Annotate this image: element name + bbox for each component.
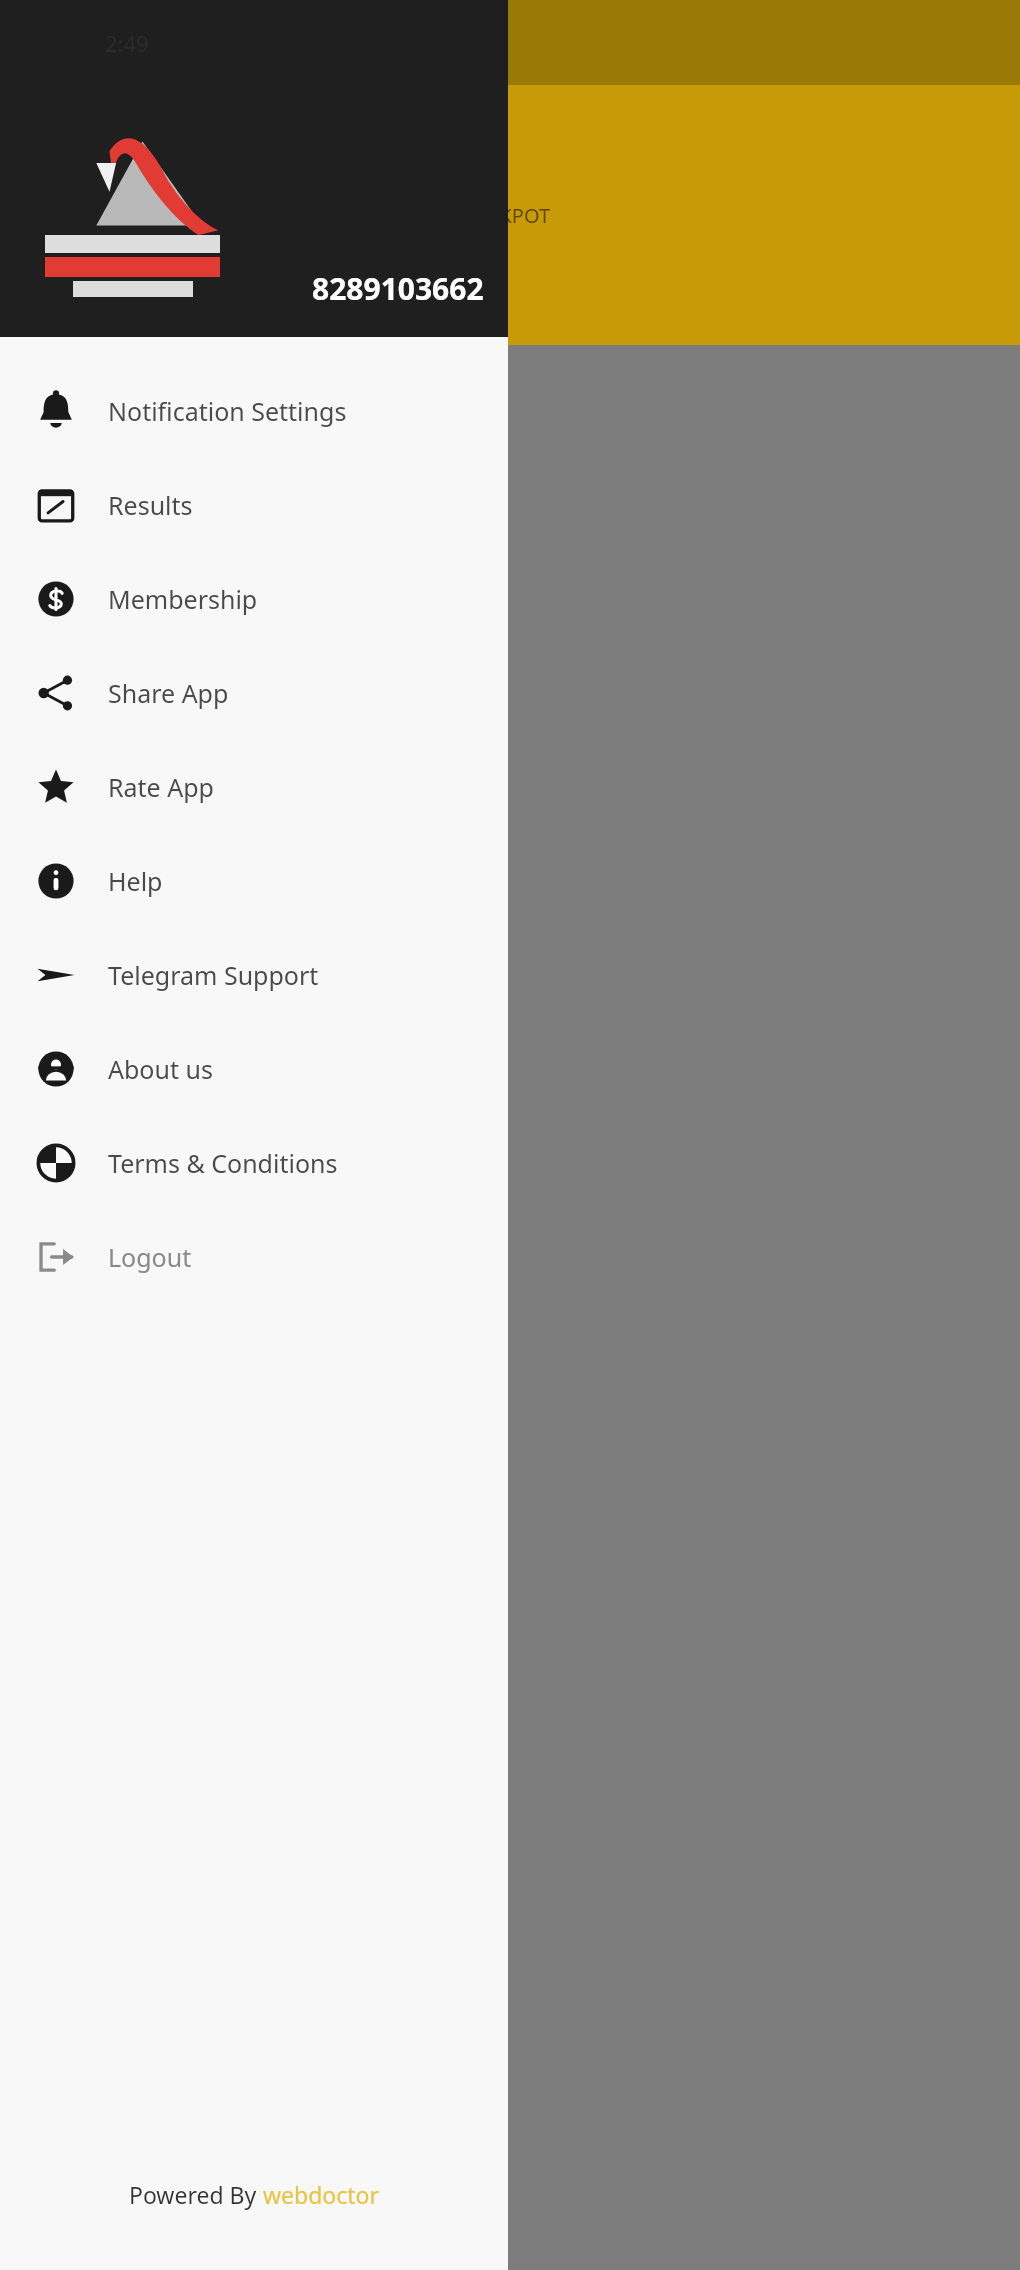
staticText: Terms & Conditions xyxy=(108,1146,338,1180)
staticText: 8289103662 xyxy=(312,268,484,309)
button[interactable]: Share App xyxy=(0,646,508,740)
button[interactable]: About us xyxy=(0,1022,508,1116)
staticText: webdoctor xyxy=(263,2179,380,2210)
button[interactable]: Membership xyxy=(0,552,508,646)
button[interactable]: Help xyxy=(0,834,508,928)
staticText: Logout xyxy=(108,1240,192,1274)
staticText: Membership xyxy=(108,582,258,616)
button[interactable]: Terms & Conditions xyxy=(0,1116,508,1210)
staticText: Telegram Support xyxy=(108,958,319,992)
staticText: About us xyxy=(108,1052,213,1086)
button[interactable]: Notification Settings xyxy=(0,364,508,458)
staticText: Notification Settings xyxy=(108,394,347,428)
staticText: Results xyxy=(108,488,193,522)
staticText: Share App xyxy=(108,676,229,710)
staticText: Help xyxy=(108,864,163,898)
button[interactable]: Rate App xyxy=(0,740,508,834)
staticText: Rate App xyxy=(108,770,214,804)
button[interactable]: Results xyxy=(0,458,508,552)
staticText: JACKPOT xyxy=(469,202,551,229)
button[interactable]: Logout xyxy=(0,1210,508,1304)
staticText: Powered By xyxy=(129,2179,263,2210)
button[interactable]: Telegram Support xyxy=(0,928,508,1022)
staticText: 2:49 xyxy=(105,28,149,58)
